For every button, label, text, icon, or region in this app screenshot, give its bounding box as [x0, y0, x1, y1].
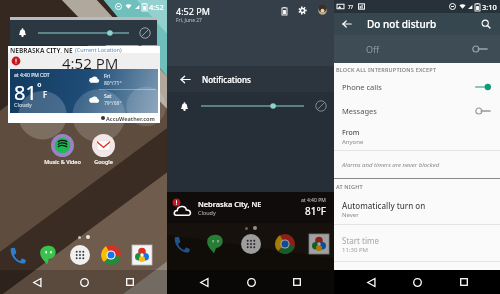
button[interactable]: Chrome	[100, 244, 122, 266]
staticText: Google	[83, 158, 124, 165]
button[interactable]: Messages	[334, 99, 500, 123]
staticText: 79°/68°	[104, 100, 122, 107]
staticText: 4:52 PM	[62, 53, 119, 69]
button[interactable]: Automatically turn on	[334, 193, 500, 224]
button[interactable]: Start time	[334, 225, 500, 261]
staticText: Alarms and timers are never blocked	[342, 161, 440, 169]
button[interactable]: Photos	[131, 244, 153, 266]
staticText: Music & Video	[42, 158, 83, 165]
staticText: Never	[342, 211, 359, 219]
button[interactable]: All apps	[69, 244, 91, 266]
staticText: AccuWeather.com	[106, 115, 155, 122]
staticText: Start time	[342, 235, 379, 246]
staticText: 4:52	[149, 2, 164, 12]
button[interactable]: Phone	[7, 244, 29, 266]
button[interactable]: Battery	[282, 7, 287, 15]
button[interactable]: Back	[194, 272, 214, 292]
staticText: 80°/71°	[104, 80, 122, 87]
button[interactable]: Nebraska City, NE	[167, 192, 334, 223]
button[interactable]: Notifications	[167, 66, 334, 92]
staticText: 81°F	[305, 204, 326, 218]
staticText: From	[342, 128, 360, 138]
staticText: Fri	[104, 73, 110, 80]
staticText: Do not disturb	[367, 17, 437, 31]
staticText: Nebraska City, NE	[198, 199, 262, 209]
button[interactable]: Search	[479, 17, 493, 31]
staticText: Sat	[104, 93, 112, 100]
staticText: Automatically turn on	[342, 200, 426, 211]
button[interactable]: Settings	[298, 6, 307, 15]
staticText: Cloudy	[14, 101, 32, 108]
button[interactable]: Phone calls	[334, 75, 500, 99]
button[interactable]: From	[334, 123, 500, 150]
button[interactable]: Back	[361, 272, 381, 292]
staticText: at 4:40 PM	[301, 197, 326, 204]
staticText: AT NIGHT	[336, 183, 363, 190]
button[interactable]: Google	[83, 133, 124, 165]
button[interactable]: Hangouts	[38, 244, 60, 266]
button[interactable]: Recents	[120, 272, 140, 292]
button[interactable]: Hangouts	[205, 233, 227, 255]
staticText: °	[37, 79, 42, 94]
button[interactable]: Photos	[308, 233, 330, 255]
staticText: F	[43, 89, 48, 100]
staticText: Notifications	[202, 74, 251, 85]
staticText: 77	[348, 4, 354, 10]
button[interactable]: Home	[407, 272, 427, 292]
staticText: Messages	[342, 106, 377, 116]
staticText: Fri, June 27	[176, 17, 202, 24]
button[interactable]: Recents	[454, 272, 474, 292]
staticText: Off	[366, 43, 380, 55]
button[interactable]: Home	[241, 272, 261, 292]
button[interactable]: Back	[27, 272, 47, 292]
staticText: at 4:40 PM CDT	[14, 72, 50, 79]
button[interactable]: Chrome	[274, 233, 296, 255]
button[interactable]: Music & Video	[42, 133, 83, 165]
staticText: 81	[14, 79, 37, 101]
button[interactable]: Off	[334, 35, 500, 63]
staticText: Anyone	[342, 138, 364, 146]
staticText: (Current Location)	[75, 46, 122, 53]
staticText: 3:10	[482, 2, 497, 12]
button[interactable]: All apps	[240, 233, 262, 255]
button[interactable]: Phone	[171, 233, 193, 255]
staticText: Cloudy	[198, 209, 216, 216]
button[interactable]: Home	[74, 272, 94, 292]
staticText: BLOCK ALL INTERRUPTIONS EXCEPT	[336, 66, 437, 73]
button[interactable]: Account	[318, 6, 327, 15]
button[interactable]: Back	[340, 17, 354, 31]
staticText: NEBRASKA CITY, NE	[10, 46, 73, 53]
staticText: 4:52 PM	[176, 5, 210, 17]
button[interactable]: Recents	[287, 272, 307, 292]
staticText: Phone calls	[342, 82, 382, 92]
staticText: 11:30 PM	[342, 246, 368, 254]
